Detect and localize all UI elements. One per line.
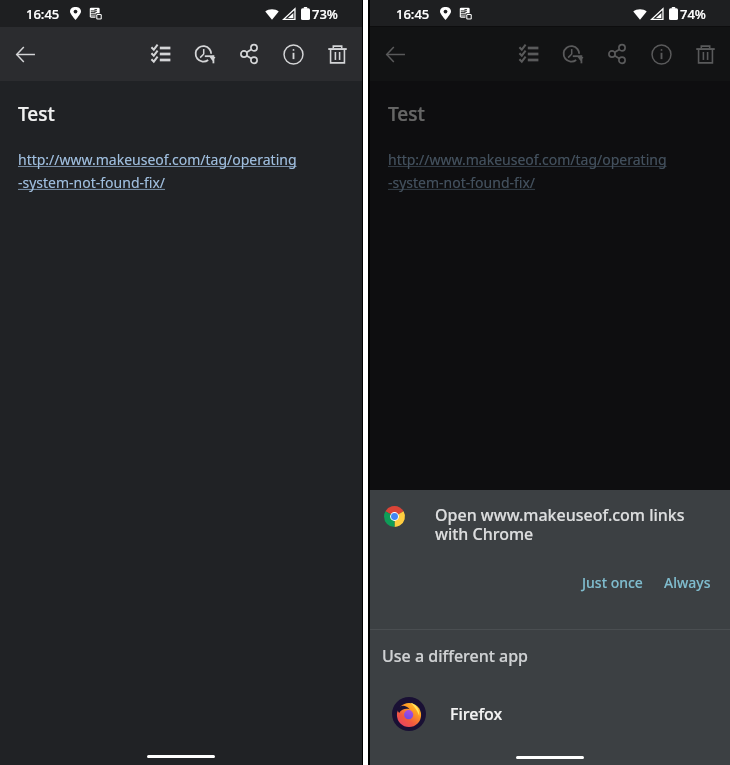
button[interactable]: Share (227, 32, 271, 76)
staticText: 16:45 (26, 5, 60, 23)
staticText: Always (664, 573, 711, 592)
button[interactable]: Delete (315, 32, 359, 76)
staticText: Use a different app (382, 645, 529, 667)
button[interactable]: Always (656, 567, 719, 598)
button[interactable]: Back (3, 32, 47, 76)
staticText: 74% (680, 5, 706, 23)
staticText: Just once (582, 573, 643, 592)
button[interactable]: Just once (574, 567, 651, 598)
button[interactable]: Info (271, 32, 315, 76)
staticText: 16:45 (396, 5, 430, 23)
button[interactable]: Checklist (507, 32, 551, 76)
button[interactable]: Info (639, 32, 683, 76)
staticText: 73% (312, 5, 338, 23)
button[interactable]: Firefox (370, 667, 730, 746)
button[interactable]: Back (373, 32, 417, 76)
button[interactable]: History (551, 32, 595, 76)
button[interactable]: Checklist (139, 32, 183, 76)
staticText: Test (18, 101, 55, 127)
staticText: Test (388, 101, 425, 127)
button[interactable]: Delete (683, 32, 727, 76)
button[interactable]: http://www.makeuseof.com/tag/operating -… (388, 150, 667, 192)
button[interactable]: Share (595, 32, 639, 76)
staticText: http://www.makeuseof.com/tag/operating -… (18, 150, 297, 192)
staticText: http://www.makeuseof.com/tag/operating -… (388, 150, 667, 192)
button[interactable]: http://www.makeuseof.com/tag/operating -… (18, 150, 297, 192)
staticText: Open www.makeuseof.com links with Chrome (435, 504, 685, 545)
staticText: Firefox (450, 703, 503, 725)
button[interactable]: History (183, 32, 227, 76)
